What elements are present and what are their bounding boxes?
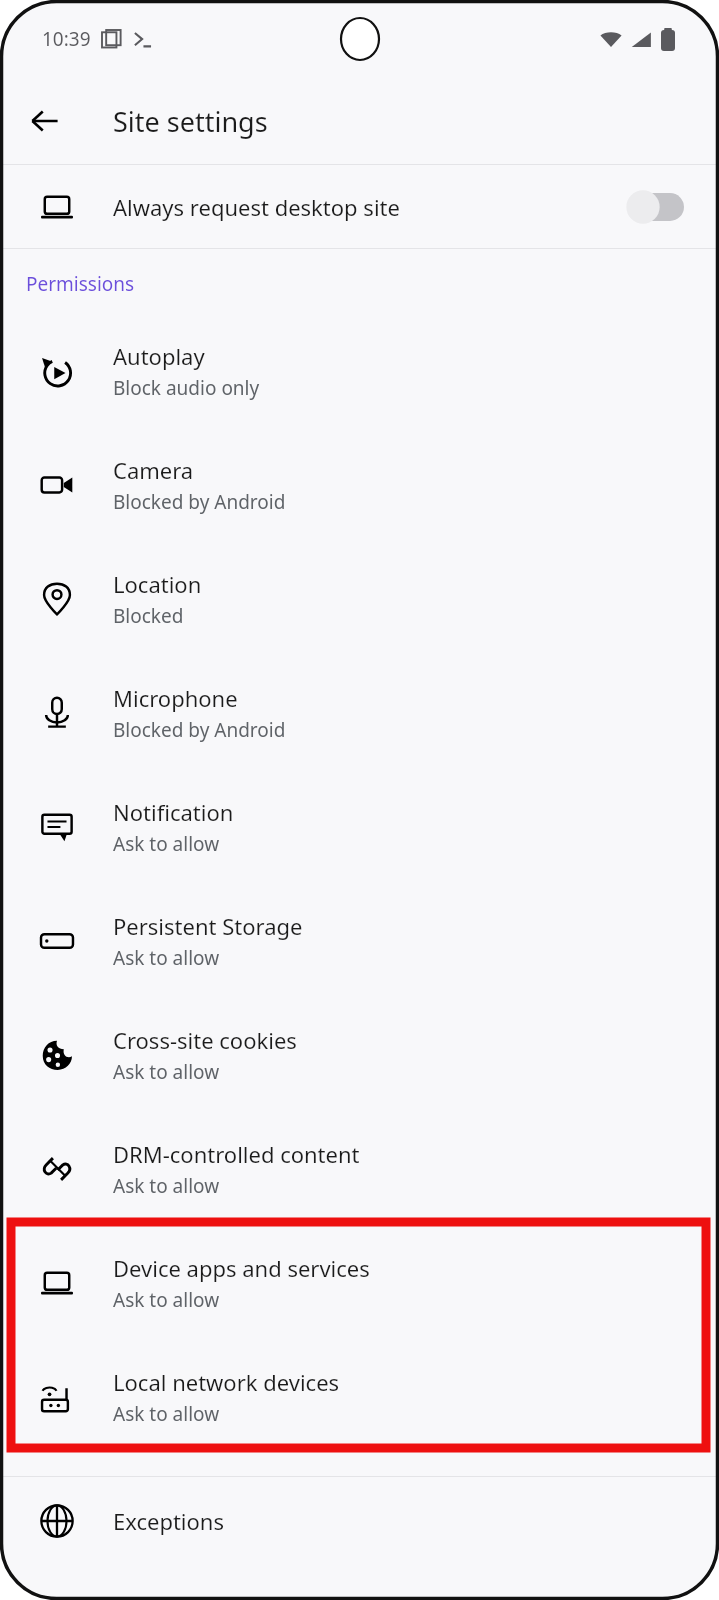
staticText: Ask to allow xyxy=(113,1173,220,1199)
staticText: Camera xyxy=(113,455,194,485)
staticText: DRM-controlled content xyxy=(113,1139,360,1169)
button[interactable]: Location xyxy=(0,542,719,656)
button[interactable]: Local network devices xyxy=(0,1340,719,1454)
button[interactable]: Microphone xyxy=(0,656,719,770)
button[interactable]: Always request desktop site xyxy=(0,165,719,248)
staticText: Permissions xyxy=(26,271,135,297)
staticText: Cross-site cookies xyxy=(113,1025,297,1055)
staticText: Ask to allow xyxy=(113,831,220,857)
button[interactable]: Cross-site cookies xyxy=(0,998,719,1112)
staticText: Location xyxy=(113,569,202,599)
button[interactable]: Notification xyxy=(0,770,719,884)
staticText: Blocked xyxy=(113,603,184,629)
staticText: Notification xyxy=(113,797,234,827)
staticText: Site settings xyxy=(113,103,268,140)
staticText: 10:39 xyxy=(42,26,91,52)
button[interactable]: DRM-controlled content xyxy=(0,1112,719,1226)
staticText: Local network devices xyxy=(113,1367,340,1397)
button[interactable]: Exceptions xyxy=(0,1477,719,1565)
staticText: Blocked by Android xyxy=(113,489,286,515)
staticText: Microphone xyxy=(113,683,238,713)
staticText: Ask to allow xyxy=(113,1287,220,1313)
button[interactable]: Autoplay xyxy=(0,314,719,428)
staticText: Device apps and services xyxy=(113,1253,370,1283)
staticText: Block audio only xyxy=(113,375,260,401)
staticText: Ask to allow xyxy=(113,1059,220,1085)
button[interactable]: Device apps and services xyxy=(0,1226,719,1340)
staticText: Always request desktop site xyxy=(113,192,400,222)
staticText: Ask to allow xyxy=(113,945,220,971)
button[interactable]: Back xyxy=(20,96,70,146)
staticText: Ask to allow xyxy=(113,1401,220,1427)
staticText: Blocked by Android xyxy=(113,717,286,743)
staticText: Exceptions xyxy=(113,1506,224,1536)
button[interactable]: Persistent Storage xyxy=(0,884,719,998)
staticText: Persistent Storage xyxy=(113,911,303,941)
staticText: Autoplay xyxy=(113,341,205,371)
button[interactable]: Camera xyxy=(0,428,719,542)
